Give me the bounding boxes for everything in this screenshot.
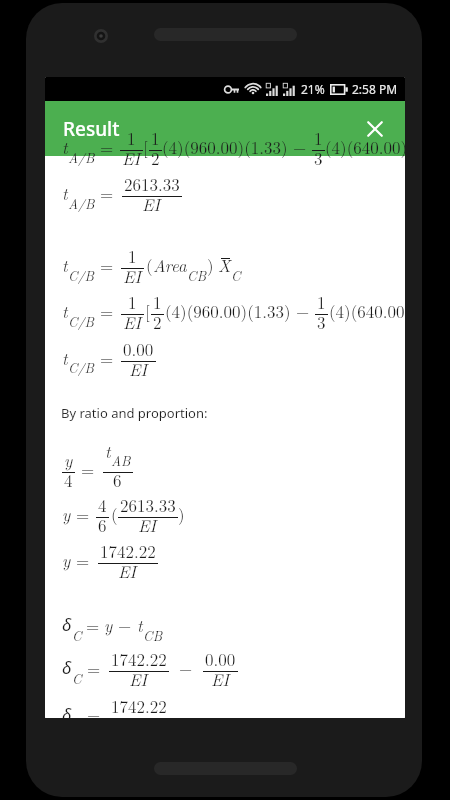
staticText: CB <box>143 626 163 645</box>
staticText: = <box>100 253 114 277</box>
staticText: C <box>72 669 82 688</box>
staticText: = <box>100 346 114 370</box>
staticText: 21% <box>301 81 325 97</box>
staticText: 1 <box>153 290 162 314</box>
staticText: − <box>296 299 310 323</box>
staticText: EI <box>118 559 137 583</box>
button[interactable]: t <box>45 156 405 718</box>
staticText: X <box>218 253 231 277</box>
staticText: EI <box>123 264 142 288</box>
staticText: CB <box>187 266 207 285</box>
staticText: EI <box>122 146 141 170</box>
staticText: 1 <box>314 126 323 150</box>
staticText: Result <box>63 116 120 142</box>
staticText: 6 <box>113 468 122 492</box>
staticText: ( <box>111 502 118 526</box>
staticText: C <box>231 266 241 285</box>
staticText: [ <box>145 299 150 323</box>
staticText: δ <box>62 656 72 679</box>
staticText: = <box>76 548 90 572</box>
staticText: t <box>62 346 68 370</box>
staticText: By ratio and proportion: <box>61 404 208 422</box>
staticText: − <box>179 656 193 680</box>
staticText: = <box>100 135 114 159</box>
staticText: t <box>62 135 68 159</box>
staticText: 3 <box>317 310 326 334</box>
staticText: 1 <box>317 290 326 314</box>
button[interactable]: Close <box>355 109 395 149</box>
staticText: EI <box>138 513 157 537</box>
staticText: 1 <box>128 290 137 314</box>
staticText: (4)(960.00)(1.33) <box>162 135 288 159</box>
staticText: 1 <box>127 126 136 150</box>
staticText: 1742.22 <box>100 539 156 563</box>
staticText: ) <box>178 502 185 526</box>
staticText: = <box>81 457 95 481</box>
staticText: C <box>72 626 82 645</box>
staticText: t <box>62 181 68 205</box>
staticText: y <box>62 548 71 572</box>
staticText: y <box>62 502 71 526</box>
staticText: 0.00 <box>123 337 154 361</box>
staticText: − <box>118 613 132 637</box>
staticText: 1 <box>128 244 137 268</box>
staticText: δ <box>62 613 72 636</box>
staticText: (4)(960.00)(1.33) <box>165 299 291 323</box>
staticText: ) <box>207 253 214 277</box>
staticText: EI <box>123 310 142 334</box>
staticText: Area <box>153 253 187 277</box>
staticText: = <box>87 656 101 680</box>
staticText: = <box>87 703 101 718</box>
staticText: 2:58 PM <box>352 81 398 97</box>
staticText: 4 <box>64 468 73 492</box>
staticText: 2613.33 <box>124 172 180 196</box>
staticText: 1 <box>151 126 160 150</box>
staticText: t <box>62 253 68 277</box>
staticText: 1742.22 <box>111 647 167 671</box>
staticText: (4)(640.00 <box>329 299 405 323</box>
staticText: = <box>86 613 100 637</box>
staticText: = <box>76 502 90 526</box>
staticText: EI <box>129 357 148 381</box>
staticText: EI <box>142 192 161 216</box>
staticText: 2 <box>151 146 160 170</box>
staticText: EI <box>129 667 148 691</box>
staticText: C/B <box>68 312 95 331</box>
staticText: 6 <box>98 513 107 537</box>
staticText: 2613.33 <box>120 493 176 517</box>
staticText: C/B <box>68 266 95 285</box>
staticText: 4 <box>98 493 107 517</box>
staticText: y <box>104 613 113 637</box>
staticText: 0.00 <box>205 647 236 671</box>
staticText: EI <box>211 667 230 691</box>
staticText: A/B <box>68 148 95 167</box>
staticText: [ <box>143 135 148 159</box>
staticText: AB <box>111 451 131 470</box>
staticText: 1742.22 <box>111 694 167 718</box>
staticText: t <box>105 439 111 463</box>
staticText: t <box>62 299 68 323</box>
staticText: t <box>137 613 143 637</box>
staticText: 3 <box>314 146 323 170</box>
staticText: δ <box>62 703 72 718</box>
staticText: = <box>100 299 114 323</box>
staticText: (4)(640.00)(2 <box>325 135 405 159</box>
staticText: C/B <box>68 358 95 377</box>
staticText: 2 <box>153 310 162 334</box>
staticText: y <box>64 448 73 472</box>
staticText: = <box>100 181 114 205</box>
staticText: ( <box>146 253 153 277</box>
staticText: − <box>293 135 307 159</box>
staticText: A/B <box>68 194 95 213</box>
